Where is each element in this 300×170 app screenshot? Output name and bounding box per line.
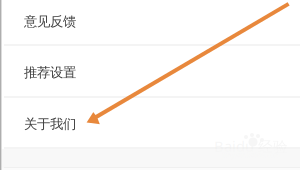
button[interactable]: 关于我们 xyxy=(0,97,300,148)
button[interactable]: 意见反馈 xyxy=(0,0,300,45)
staticText: Baidu 经验 xyxy=(214,136,288,156)
staticText: 意见反馈 xyxy=(24,13,76,30)
staticText: 推荐设置 xyxy=(24,64,76,81)
button[interactable]: 推荐设置 xyxy=(0,45,300,97)
staticText: 关于我们 xyxy=(24,116,76,132)
